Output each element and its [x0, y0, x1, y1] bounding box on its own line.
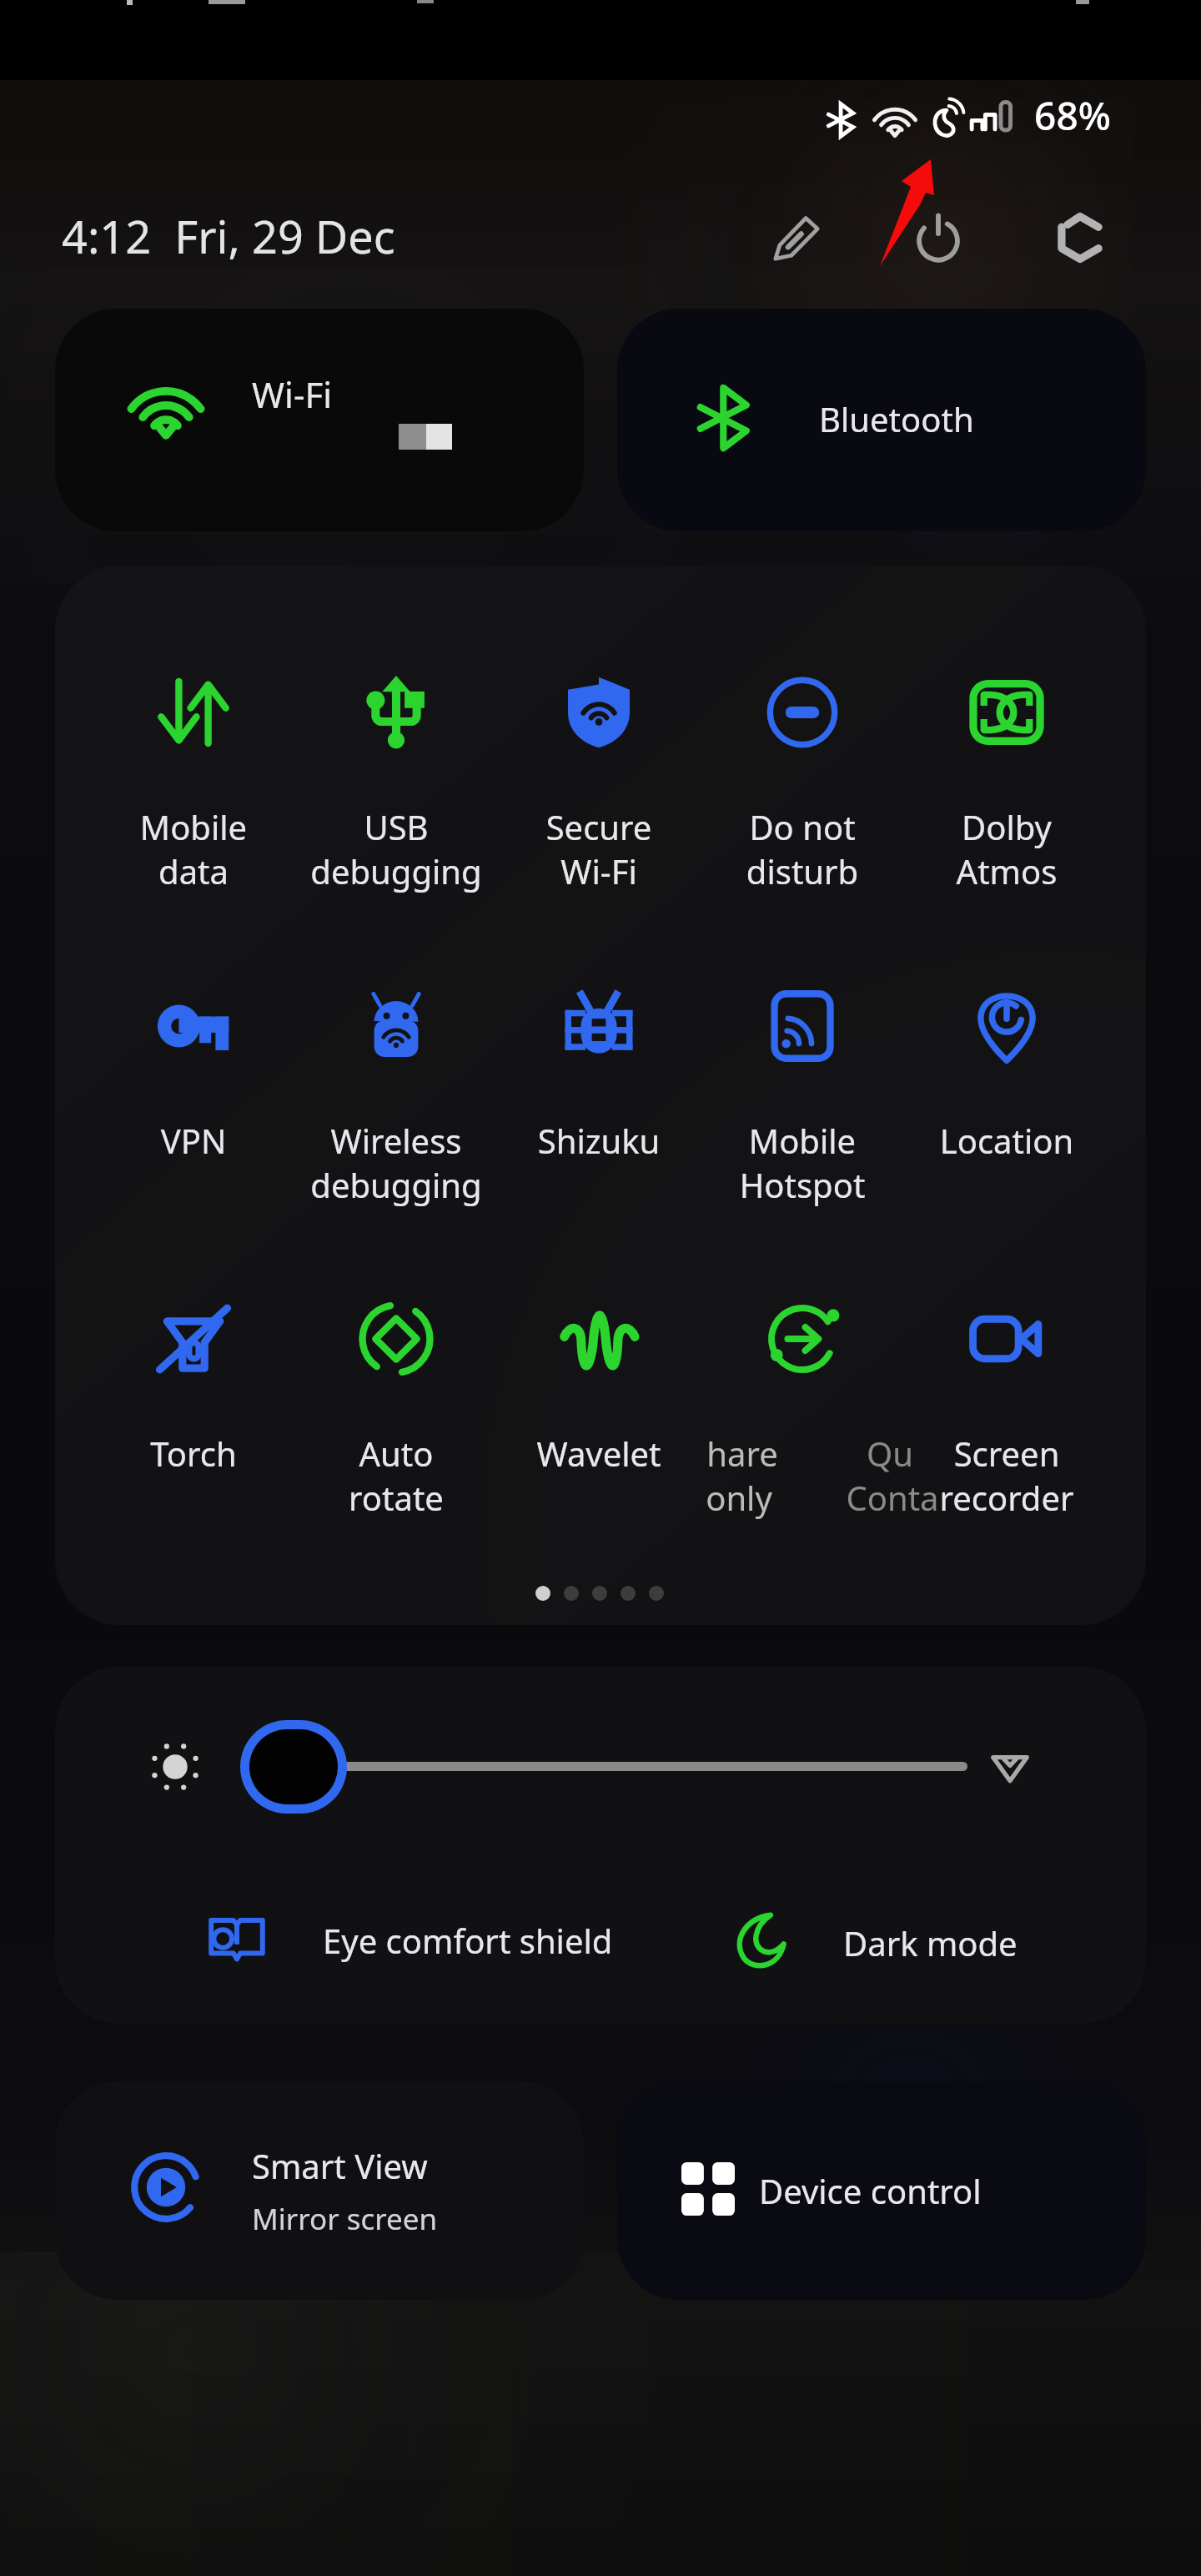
button[interactable]: Edit buttons	[751, 193, 842, 283]
button[interactable]: Shizuku	[499, 954, 699, 1213]
button[interactable]: Device control	[617, 2081, 1146, 2300]
button[interactable]: Quick Share	[702, 1267, 902, 1526]
staticText: Wi-Fi	[252, 370, 333, 418]
staticText: Mobile data	[68, 804, 319, 893]
button[interactable]: Mobile data	[93, 641, 294, 899]
staticText: hare	[617, 1431, 867, 1476]
button[interactable]: Expand brightness	[968, 1725, 1052, 1809]
staticText: Dark mode	[843, 1920, 1018, 1965]
staticText: 4:12 Fri, 29 Dec	[62, 205, 395, 267]
button[interactable]: Eye comfort shield	[203, 1909, 686, 2001]
button[interactable]: Power off	[893, 193, 983, 283]
staticText: only	[614, 1475, 864, 1520]
staticText: Do not disturb	[677, 804, 927, 893]
staticText: Shizuku	[474, 1118, 724, 1163]
button[interactable]: Settings	[1035, 193, 1125, 283]
button[interactable]: VPN	[93, 954, 294, 1213]
button[interactable]: Bluetooth	[617, 309, 1146, 531]
button[interactable]: USB debugging	[296, 641, 496, 899]
staticText: Screen recorder	[882, 1431, 1132, 1520]
button[interactable]: Wireless debugging	[296, 954, 496, 1213]
button[interactable]: Auto rotate	[296, 1267, 496, 1526]
staticText: VPN	[68, 1118, 319, 1163]
button[interactable]: Wavelet	[499, 1267, 699, 1526]
staticText: 68%	[1034, 89, 1111, 142]
staticText: Torch	[68, 1431, 319, 1476]
staticText: USB debugging	[271, 804, 521, 893]
staticText: Wireless debugging	[271, 1118, 521, 1207]
button[interactable]: Location	[907, 954, 1107, 1213]
staticText: Conta	[767, 1475, 1018, 1520]
staticText: Device control	[759, 2168, 982, 2213]
button[interactable]: Dolby Atmos	[907, 641, 1107, 899]
button[interactable]: Smart View	[55, 2081, 584, 2300]
staticText: Mobile Hotspot	[677, 1118, 927, 1207]
button[interactable]: Mobile Hotspot	[702, 954, 902, 1213]
button[interactable]: Wi-Fi	[55, 309, 584, 531]
staticText: Location	[882, 1118, 1132, 1163]
staticText: Secure Wi-Fi	[474, 804, 724, 893]
staticText: Eye comfort shield	[323, 1918, 613, 1963]
staticText: Bluetooth	[819, 396, 974, 441]
staticText: Smart View	[252, 2143, 428, 2188]
button[interactable]: Brightness	[249, 1729, 338, 1804]
button[interactable]: Dark mode	[722, 1905, 1056, 2005]
staticText: Mirror screen	[252, 2199, 438, 2239]
staticText: Dolby Atmos	[882, 804, 1132, 893]
staticText: Qu	[765, 1431, 1015, 1476]
button[interactable]: Screen recorder	[907, 1267, 1107, 1526]
button[interactable]: Do not disturb	[702, 641, 902, 899]
staticText: Auto rotate	[271, 1431, 521, 1520]
staticText: Wavelet	[474, 1431, 724, 1476]
button[interactable]: Torch	[93, 1267, 294, 1526]
button[interactable]: Secure Wi-Fi	[499, 641, 699, 899]
